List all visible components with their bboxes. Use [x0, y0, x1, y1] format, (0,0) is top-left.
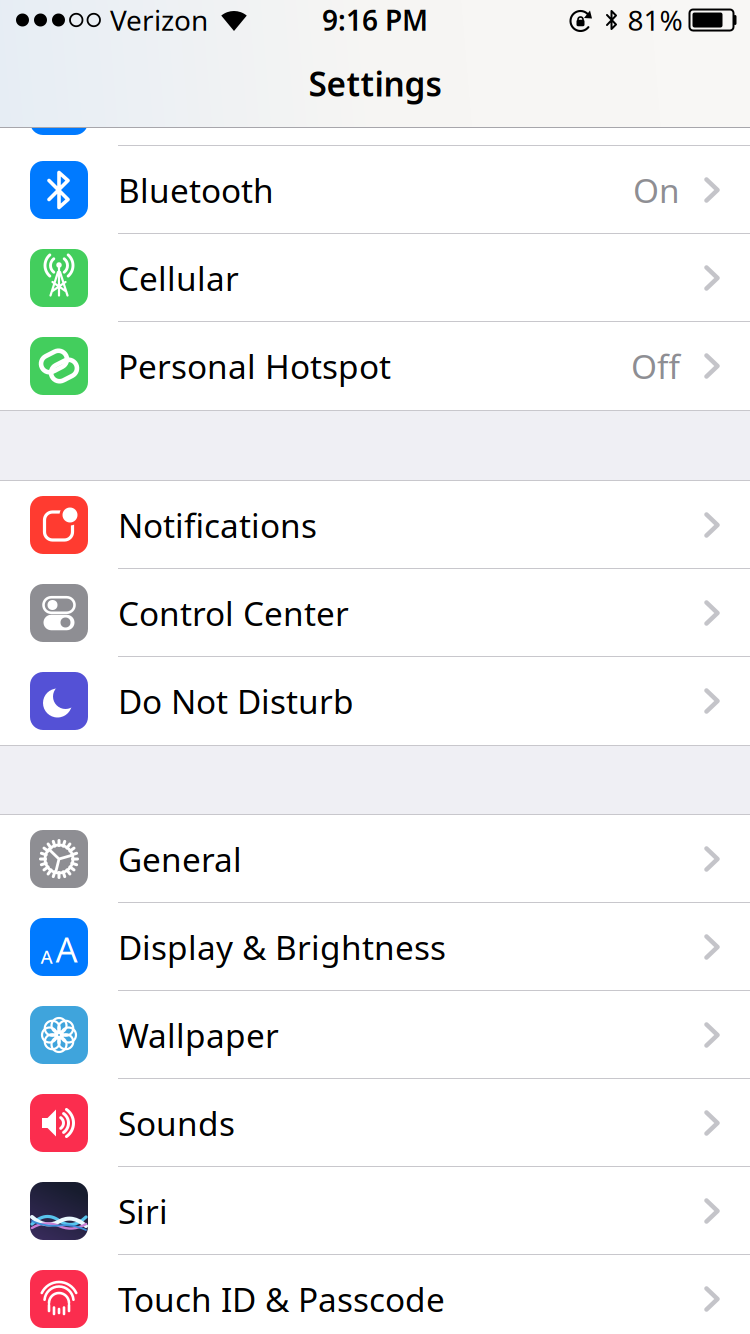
staticText: Settings: [308, 61, 441, 106]
staticText: Sounds: [118, 1101, 235, 1145]
staticText: On: [633, 168, 680, 212]
staticText: A: [40, 944, 52, 969]
staticText: Siri: [118, 1189, 168, 1233]
staticText: Touch ID & Passcode: [118, 1277, 445, 1321]
button[interactable]: Personal Hotspot: [0, 322, 750, 410]
staticText: Do Not Disturb: [118, 679, 354, 723]
button[interactable]: A: [0, 903, 750, 991]
staticText: General: [118, 837, 242, 881]
staticText: Control Center: [118, 591, 349, 635]
staticText: Wallpaper: [118, 1013, 279, 1057]
staticText: A: [55, 926, 77, 972]
button[interactable]: Wallpaper: [0, 991, 750, 1079]
button[interactable]: Bluetooth: [0, 146, 750, 234]
staticText: Bluetooth: [118, 168, 274, 212]
button[interactable]: Siri: [0, 1167, 750, 1255]
button[interactable]: General: [0, 815, 750, 903]
button[interactable]: Control Center: [0, 569, 750, 657]
button[interactable]: Touch ID & Passcode: [0, 1255, 750, 1334]
staticText: 81%: [627, 1, 682, 39]
staticText: Verizon: [110, 1, 208, 39]
button[interactable]: Notifications: [0, 481, 750, 569]
button[interactable]: Sounds: [0, 1079, 750, 1167]
staticText: Off: [631, 344, 680, 388]
staticText: Cellular: [118, 256, 239, 300]
staticText: Display & Brightness: [118, 925, 446, 969]
button[interactable]: Cellular: [0, 234, 750, 322]
button[interactable]: Do Not Disturb: [0, 657, 750, 745]
staticText: Personal Hotspot: [118, 344, 391, 388]
staticText: 9:16 PM: [322, 1, 428, 39]
staticText: Notifications: [118, 503, 317, 547]
